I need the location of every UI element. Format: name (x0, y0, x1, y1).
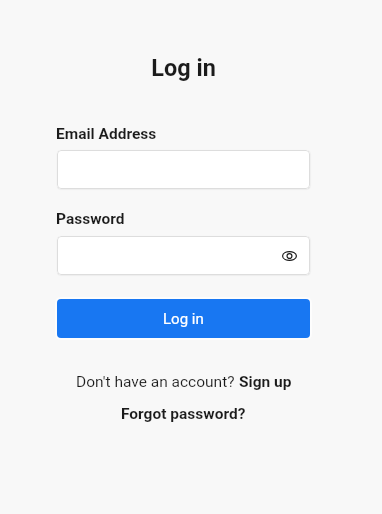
staticText: Sign up (239, 373, 292, 391)
staticText: Log in (151, 54, 216, 82)
staticText: Log in (163, 310, 204, 328)
button[interactable] (57, 150, 310, 189)
staticText: Email Address (56, 125, 157, 143)
staticText: Don't have an account? (76, 373, 239, 391)
button[interactable]: Show password (282, 251, 297, 261)
staticText: Forgot password? (121, 405, 246, 423)
button[interactable]: Log in (57, 299, 310, 338)
button[interactable]: Show password (57, 236, 310, 275)
staticText: Password (56, 210, 125, 228)
button[interactable]: Sign up (239, 373, 292, 391)
button[interactable]: Forgot password? (121, 405, 246, 423)
